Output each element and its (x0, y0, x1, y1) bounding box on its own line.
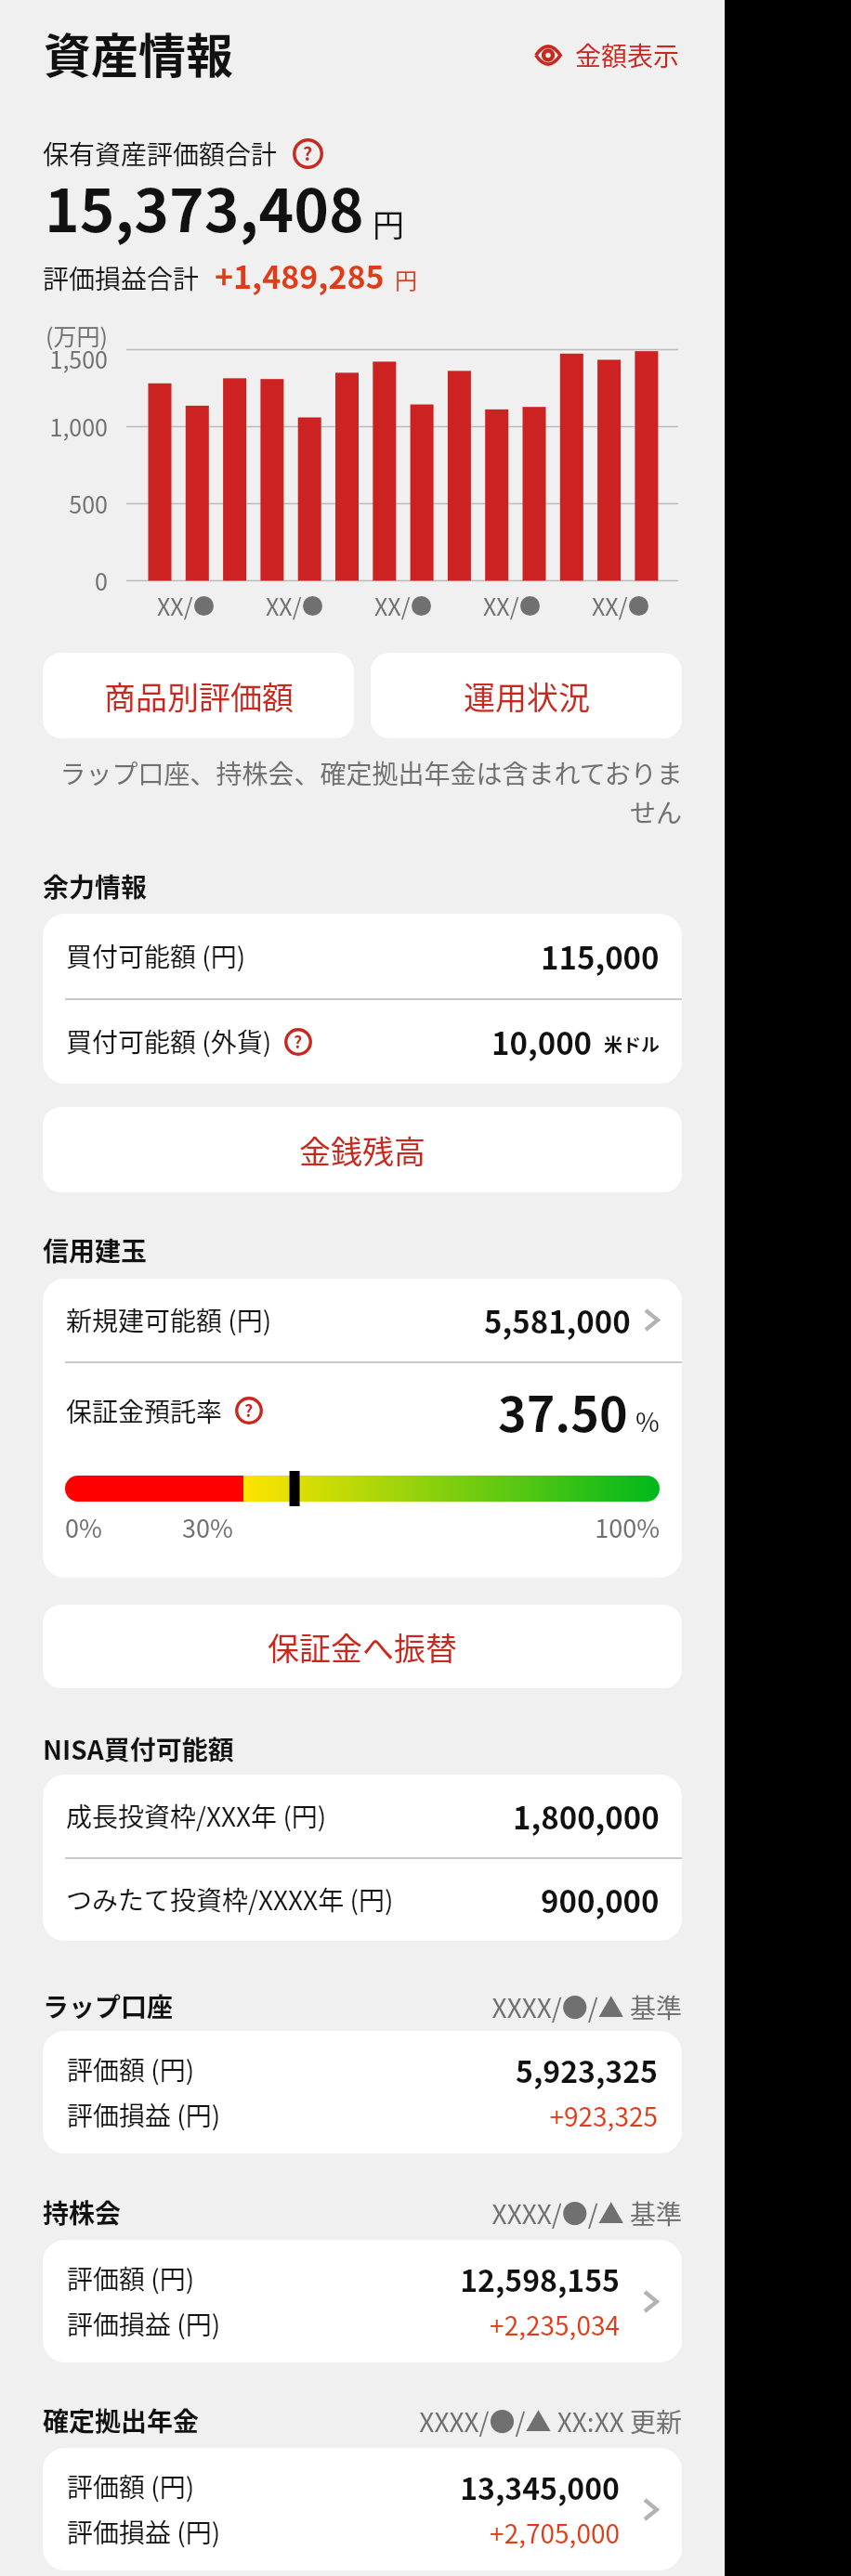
staticText: 信用建玉 (43, 1231, 148, 1269)
staticText: 資産情報 (44, 19, 234, 87)
staticText: 5,923,325 (43, 2049, 658, 2091)
staticText: XX/ (483, 589, 519, 622)
staticText: 円 (395, 263, 417, 295)
staticText: 買付可能額 (円) (66, 937, 246, 975)
staticText: 保証金へ振替 (268, 1624, 457, 1670)
staticText: 12,598,155 (43, 2257, 620, 2300)
staticText: 評価損益 (円) (67, 2513, 221, 2551)
button[interactable]: 評価額 (円) (43, 2448, 682, 2570)
staticText: 評価損益合計 (43, 259, 200, 297)
staticText: 5,581,000 (484, 1298, 631, 1343)
staticText: XXXX/●/▲ 基準 (43, 1988, 682, 2026)
staticText: 0 (0, 564, 108, 597)
button[interactable]: 買付可能額 (円) (43, 914, 682, 998)
staticText: +2,235,034 (43, 2306, 620, 2344)
staticText: ? (244, 1398, 254, 1422)
staticText: 商品別評価額 (104, 673, 294, 719)
button[interactable]: 買付可能額 (外貨) (43, 999, 682, 1084)
staticText: (万円) (0, 319, 108, 352)
staticText: 保証金預託率 (66, 1392, 223, 1430)
staticText: 買付可能額 (外貨) (66, 1022, 272, 1060)
staticText: XX/ (592, 589, 628, 622)
staticText: 評価損益 (円) (67, 2305, 221, 2343)
staticText: XX/ (157, 589, 193, 622)
staticText: 確定拠出年金 (43, 2401, 200, 2439)
staticText: つみたて投資枠/XXXX年 (円) (66, 1880, 394, 1919)
staticText: 900,000 (541, 1878, 660, 1922)
staticText: 保有資産評価額合計 (43, 135, 278, 173)
button[interactable]: 金銭残高 (43, 1107, 682, 1192)
staticText: 評価額 (円) (67, 2259, 195, 2297)
staticText: 100% (43, 1509, 660, 1545)
staticText: 1,800,000 (513, 1794, 660, 1839)
staticText: XX/ (374, 589, 411, 622)
staticText: ラップ口座、持株会、確定拠出年金は含まれておりません (43, 754, 682, 830)
staticText: 1,500 (0, 342, 108, 375)
button[interactable]: 金額表示 (523, 31, 691, 79)
staticText: 30% (182, 1509, 233, 1545)
staticText: 1,000 (0, 410, 108, 443)
staticText: ラップ口座 (43, 1987, 174, 2025)
button[interactable]: 新規建可能額 (円) (43, 1279, 682, 1361)
staticText: 円 (373, 201, 404, 246)
staticText: 余力情報 (43, 867, 148, 905)
staticText: ? (303, 139, 313, 166)
staticText: 持株会 (43, 2193, 122, 2231)
staticText: 評価損益 (円) (67, 2096, 221, 2134)
staticText: 金銭残高 (299, 1127, 425, 1173)
button[interactable]: 保証金預託率 (43, 1362, 682, 1578)
staticText: 成長投資枠/XXX年 (円) (66, 1797, 327, 1835)
staticText: 新規建可能額 (円) (66, 1301, 272, 1339)
staticText: NISA買付可能額 (43, 1730, 234, 1768)
staticText: 米ドル (604, 1031, 660, 1058)
staticText: 10,000 (491, 1020, 593, 1064)
button[interactable]: 商品別評価額 (43, 653, 354, 738)
staticText: +2,705,000 (43, 2514, 620, 2552)
button[interactable]: 保証金へ振替 (43, 1605, 682, 1688)
button[interactable]: つみたて投資枠/XXXX年 (円) (43, 1858, 682, 1941)
staticText: XXXX/●/▲ 基準 (43, 2194, 682, 2232)
staticText: 13,345,000 (43, 2465, 620, 2508)
button[interactable]: 成長投資枠/XXX年 (円) (43, 1775, 682, 1857)
staticText: XX/ (266, 589, 302, 622)
staticText: 評価額 (円) (67, 2467, 195, 2505)
staticText: +923,325 (43, 2097, 658, 2135)
staticText: ? (294, 1029, 303, 1053)
staticText: 0% (65, 1509, 102, 1545)
staticText: XXXX/●/▲ XX:XX 更新 (43, 2402, 682, 2440)
staticText: +1,489,285 (215, 253, 385, 298)
staticText: % (635, 1402, 660, 1440)
button[interactable]: 評価額 (円) (43, 2031, 682, 2153)
staticText: 金額表示 (575, 36, 680, 74)
staticText: 15,373,408 (45, 163, 364, 250)
staticText: 37.50 (498, 1376, 628, 1446)
staticText: 115,000 (541, 934, 660, 979)
staticText: 評価額 (円) (67, 2050, 195, 2088)
staticText: 運用状況 (464, 673, 590, 719)
button[interactable]: 評価額 (円) (43, 2240, 682, 2362)
button[interactable]: 運用状況 (371, 653, 682, 738)
staticText: 500 (0, 487, 108, 520)
